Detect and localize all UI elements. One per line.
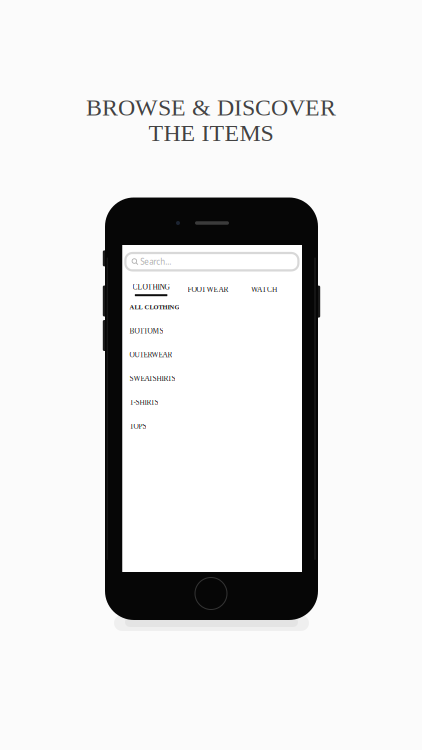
button[interactable]: CLOTHING — [125, 280, 177, 298]
button[interactable]: WATCH — [238, 280, 290, 298]
staticText: SWEATSHIRTS — [129, 374, 175, 383]
staticText: TOPS — [129, 422, 146, 430]
button[interactable]: BOTTOMS — [129, 319, 289, 343]
button[interactable]: FOOTWEAR — [182, 280, 234, 298]
button[interactable]: SWEATSHIRTS — [129, 367, 289, 390]
button[interactable]: OUTERWEAR — [129, 343, 289, 367]
button[interactable]: TOPS — [129, 414, 289, 438]
staticText: ALL CLOTHING — [129, 304, 179, 311]
staticText: BOTTOMS — [129, 327, 163, 335]
button[interactable]: ALL CLOTHING — [129, 295, 289, 319]
button[interactable]: Search... — [125, 253, 298, 270]
staticText: OUTERWEAR — [129, 351, 172, 359]
staticText: Search... — [140, 256, 171, 267]
staticText: CLOTHING — [133, 283, 170, 291]
button[interactable]: T-SHIRTS — [129, 390, 289, 414]
staticText: BROWSE & DISCOVER — [86, 94, 336, 121]
staticText: THE ITEMS — [148, 120, 273, 146]
staticText: WATCH — [251, 285, 277, 294]
staticText: T-SHIRTS — [129, 398, 158, 406]
staticText: FOOTWEAR — [187, 285, 228, 294]
